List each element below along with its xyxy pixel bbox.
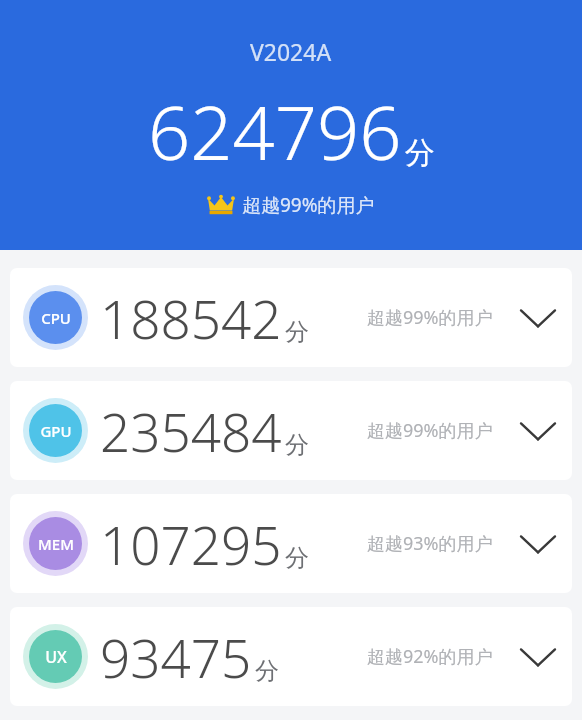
staticText: 分 [285, 430, 309, 460]
button[interactable]: Expand CPU details [515, 295, 561, 341]
staticText: V2024A [250, 36, 332, 67]
staticText: 分 [285, 543, 309, 573]
staticText: GPU [40, 421, 72, 441]
staticText: 超越99%的用户 [367, 418, 493, 443]
button[interactable]: MEM [10, 494, 572, 593]
staticText: 分 [285, 317, 309, 347]
staticText: 超越93%的用户 [367, 531, 493, 556]
staticText: CPU [41, 308, 71, 328]
staticText: UX [45, 646, 67, 668]
staticText: 超越99%的用户 [242, 192, 375, 218]
staticText: 235484 [100, 395, 282, 467]
button[interactable]: Expand GPU details [515, 408, 561, 454]
staticText: 分 [255, 656, 279, 686]
button[interactable]: CPU [10, 268, 572, 367]
staticText: 107295 [100, 508, 282, 580]
staticText: 624796 [148, 81, 402, 182]
staticText: 188542 [100, 282, 282, 354]
button[interactable]: UX [10, 607, 572, 706]
button[interactable]: Expand UX details [515, 634, 561, 680]
staticText: 超越92%的用户 [367, 644, 493, 669]
button[interactable]: GPU [10, 381, 572, 480]
staticText: MEM [38, 534, 74, 554]
staticText: 分 [405, 134, 435, 172]
staticText: 93475 [100, 621, 252, 693]
staticText: 超越99%的用户 [367, 305, 493, 330]
button[interactable]: Expand MEM details [515, 521, 561, 567]
